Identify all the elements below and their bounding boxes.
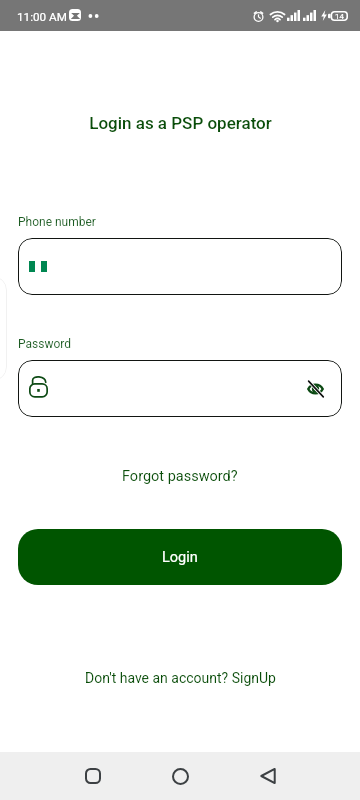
staticText: 14 — [335, 12, 344, 21]
button[interactable]: Phone number — [18, 238, 342, 295]
staticText: Forgot password? — [122, 468, 238, 485]
button[interactable]: Don't have an account? SignUp — [79, 668, 282, 688]
button[interactable]: Forgot password? — [116, 466, 244, 487]
button[interactable]: Password — [18, 360, 342, 417]
button[interactable]: Home — [164, 760, 196, 792]
staticText: Password — [18, 337, 72, 351]
button[interactable]: Back — [252, 760, 284, 792]
button[interactable]: Recents — [77, 760, 109, 792]
staticText: Don't have an account? SignUp — [85, 670, 276, 686]
staticText: 11:00 AM — [17, 10, 67, 24]
staticText: Login as a PSP operator — [89, 113, 272, 133]
staticText: Phone number — [18, 215, 96, 229]
button[interactable]: Login — [18, 529, 342, 585]
staticText: Login — [162, 549, 198, 566]
button[interactable]: Show password — [302, 375, 330, 403]
